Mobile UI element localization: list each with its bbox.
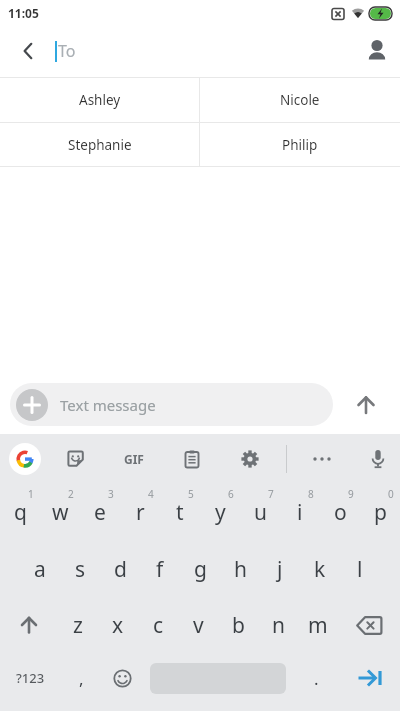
staticText: GIF [124,451,144,467]
staticText: h [234,555,247,584]
staticText: y [215,498,226,527]
button[interactable]: l [340,541,380,597]
button[interactable] [302,439,342,479]
staticText: To [58,40,76,62]
staticText: o [334,498,347,527]
button[interactable]: ?123 [0,653,60,703]
button[interactable]: n [258,597,298,653]
staticText: n [272,611,285,640]
staticText: c [153,611,164,640]
staticText: Philip [282,136,318,154]
staticText: 9 [348,487,354,501]
button[interactable] [346,653,400,703]
button[interactable] [56,439,96,479]
button[interactable]: v [178,597,218,653]
button[interactable]: Text message [10,383,333,426]
button[interactable]: t [160,484,200,541]
staticText: j [277,555,283,584]
staticText: 6 [228,487,234,501]
staticText: u [254,498,267,527]
staticText: t [176,498,184,527]
button[interactable]: , [60,653,102,703]
staticText: 8 [308,487,314,501]
button[interactable]: e [80,484,120,541]
staticText: 11:05 [8,5,39,21]
staticText: Ashley [79,91,121,109]
button[interactable]: Nicole [200,78,400,122]
button[interactable] [338,597,400,653]
staticText: d [114,555,127,584]
button[interactable]: d [100,541,140,597]
staticText: v [193,611,204,640]
staticText: 0 [388,487,394,501]
staticText: w [52,498,69,527]
button[interactable] [346,385,386,425]
button[interactable]: b [218,597,258,653]
staticText: k [314,555,326,584]
staticText: 2 [68,487,74,501]
button[interactable]: h [220,541,260,597]
button[interactable] [8,31,48,71]
staticText: i [297,498,303,527]
staticText: 3 [108,487,114,501]
staticText: e [94,498,106,527]
button[interactable]: GIF [114,439,154,479]
staticText: 4 [148,487,154,501]
button[interactable] [358,439,398,479]
button[interactable]: Stephanie [0,123,199,166]
staticText: Text message [60,395,156,415]
staticText: p [374,498,387,527]
button[interactable]: j [260,541,300,597]
button[interactable] [230,439,270,479]
staticText: 1 [28,487,34,501]
button[interactable]: a [20,541,60,597]
button[interactable]: z [58,597,98,653]
staticText: a [34,555,46,584]
staticText: , [79,667,84,690]
button[interactable] [102,653,142,703]
button[interactable] [172,439,212,479]
button[interactable]: w [40,484,80,541]
staticText: ?123 [16,669,45,687]
staticText: Nicole [280,91,320,109]
button[interactable] [357,31,397,71]
button[interactable]: g [180,541,220,597]
staticText: . [314,667,319,690]
button[interactable]: u [240,484,280,541]
button[interactable]: . [286,653,346,703]
staticText: x [112,611,124,640]
button[interactable]: x [98,597,138,653]
button[interactable]: f [140,541,180,597]
staticText: f [156,555,164,584]
button[interactable]: k [300,541,340,597]
button[interactable] [16,389,48,421]
button[interactable] [0,597,58,653]
staticText: s [75,555,86,584]
staticText: 5 [188,487,194,501]
button[interactable]: Ashley [0,78,199,122]
staticText: q [14,498,27,527]
staticText: g [194,555,207,584]
button[interactable]: m [298,597,338,653]
staticText: 7 [268,487,274,501]
staticText: z [73,611,83,640]
button[interactable]: r [120,484,160,541]
button[interactable]: Philip [200,123,400,166]
button[interactable] [9,443,41,475]
staticText: m [308,611,328,640]
staticText: b [232,611,245,640]
button[interactable]: p [360,484,400,541]
staticText: Stephanie [68,136,132,154]
staticText: l [357,555,363,584]
button[interactable]: o [320,484,360,541]
button[interactable]: c [138,597,178,653]
staticText: r [136,498,145,527]
button[interactable]: i [280,484,320,541]
button[interactable]: s [60,541,100,597]
button[interactable]: y [200,484,240,541]
button[interactable]: q [0,484,40,541]
